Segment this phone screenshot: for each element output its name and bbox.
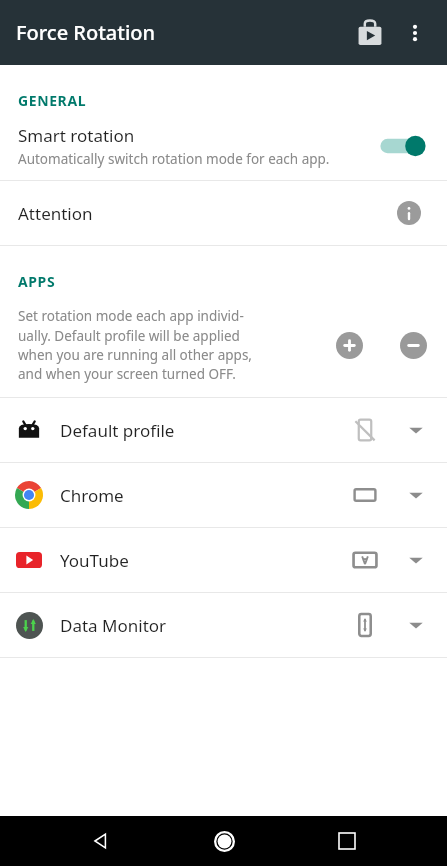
button[interactable]: Expand Data Monitor bbox=[397, 606, 435, 644]
staticText: Smart rotation bbox=[18, 124, 135, 147]
button[interactable]: Rotation mode bbox=[343, 603, 387, 647]
button[interactable]: Smart rotation bbox=[0, 114, 447, 180]
staticText: Set rotation mode each app individ- uall… bbox=[18, 307, 252, 383]
button[interactable]: More options bbox=[393, 11, 437, 55]
button[interactable]: Data Monitor bbox=[0, 593, 447, 657]
button[interactable]: Recent apps bbox=[323, 817, 371, 865]
button[interactable]: Default profile bbox=[0, 398, 447, 462]
staticText: APPS bbox=[18, 272, 56, 291]
button[interactable]: Play Store bbox=[347, 10, 393, 56]
button[interactable]: Rotation mode bbox=[343, 473, 387, 517]
button[interactable]: Rotation mode bbox=[343, 538, 387, 582]
button[interactable]: Smart rotation toggle bbox=[377, 126, 433, 166]
staticText: Default profile bbox=[60, 419, 175, 442]
staticText: YouTube bbox=[60, 549, 129, 572]
staticText: Automatically switch rotation mode for e… bbox=[18, 150, 330, 168]
button[interactable]: Rotation mode bbox=[343, 408, 387, 452]
staticText: Data Monitor bbox=[60, 614, 167, 637]
staticText: Attention bbox=[18, 202, 93, 225]
button[interactable]: Expand Chrome bbox=[397, 476, 435, 514]
button[interactable]: Expand YouTube bbox=[397, 541, 435, 579]
button[interactable]: Chrome bbox=[0, 463, 447, 527]
button[interactable]: YouTube bbox=[0, 528, 447, 592]
button[interactable]: Home bbox=[200, 817, 248, 865]
button[interactable]: Expand Default profile bbox=[397, 411, 435, 449]
button[interactable]: Back bbox=[76, 817, 124, 865]
staticText: Force Rotation bbox=[16, 19, 156, 46]
button[interactable]: Add app bbox=[329, 325, 369, 365]
button[interactable]: Remove app bbox=[393, 325, 433, 365]
staticText: GENERAL bbox=[18, 91, 87, 110]
button[interactable]: Attention info bbox=[389, 193, 429, 233]
button[interactable]: Attention bbox=[0, 181, 447, 245]
staticText: Chrome bbox=[60, 484, 124, 507]
